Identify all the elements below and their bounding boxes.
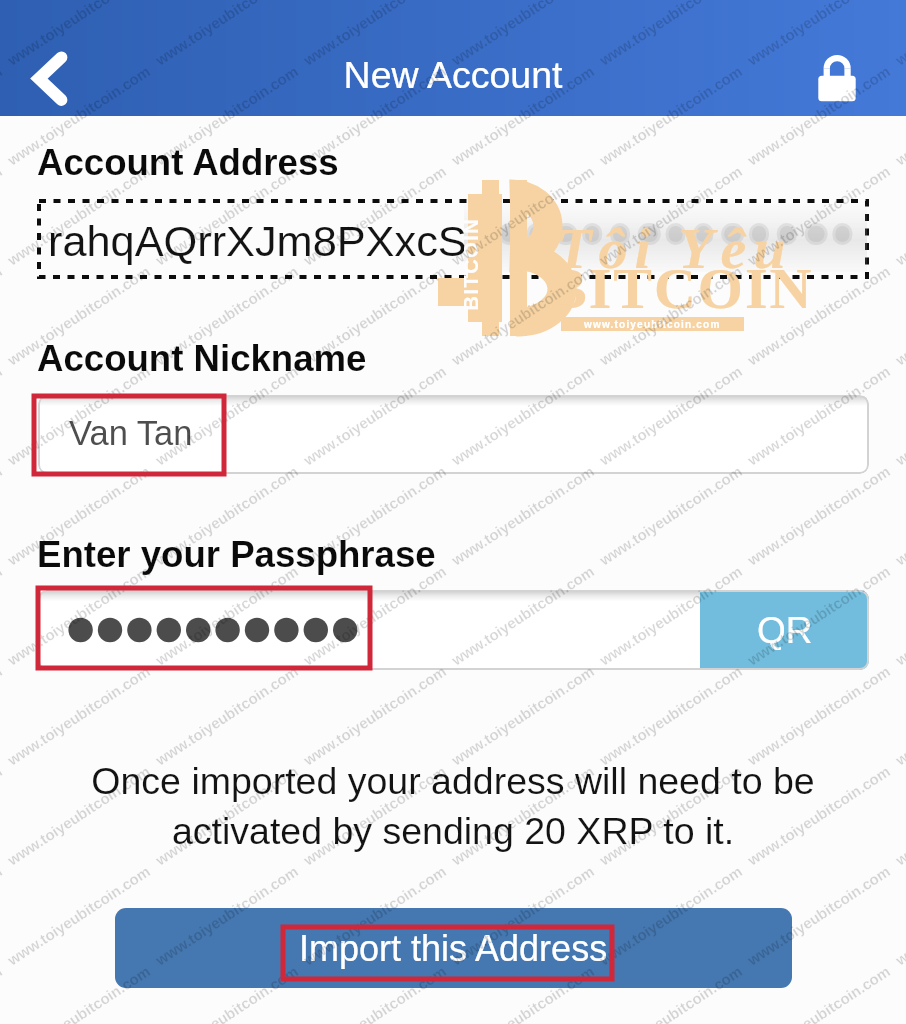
button[interactable]: Back (10, 34, 82, 104)
staticText: Enter your Passphrase (37, 534, 436, 575)
button[interactable]: Van Tan (38, 395, 869, 474)
staticText: Import this Address (299, 928, 608, 968)
staticText: www.toiyeubitcoin.com (584, 319, 721, 330)
staticText: BITCOIN (459, 217, 481, 310)
button[interactable]: rahqAQrrXJm8PXxcS (37, 199, 869, 279)
staticText: BITCOIN (548, 256, 814, 320)
button[interactable]: Lock (800, 40, 874, 110)
staticText: Account Nickname (37, 338, 367, 379)
staticText: New Account (0, 54, 906, 96)
button[interactable]: QR (700, 590, 869, 670)
button[interactable]: Import this Address (115, 908, 792, 988)
staticText: Once imported your address will need to … (0, 760, 906, 852)
staticText: Tôi Yêu (556, 216, 793, 280)
staticText: Account Address (37, 142, 339, 183)
staticText: rahqAQrrXJm8PXxcS (48, 217, 467, 265)
staticText: QR (757, 610, 813, 651)
staticText: Van Tan (69, 414, 193, 453)
